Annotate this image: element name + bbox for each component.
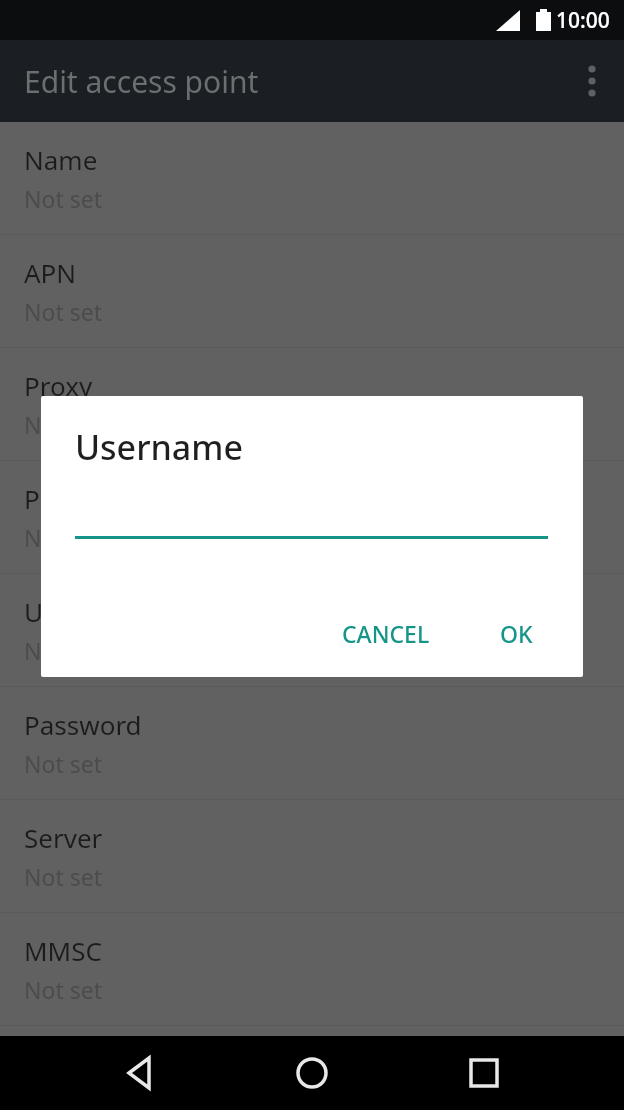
button[interactable]: Proxy xyxy=(0,348,624,460)
button[interactable]: MMSC xyxy=(0,913,624,1025)
staticText: Proxy xyxy=(24,368,93,403)
staticText: Name xyxy=(24,142,98,177)
button[interactable]: Name xyxy=(0,122,624,234)
staticText: 10:00 xyxy=(556,6,610,35)
button[interactable]: Back xyxy=(108,1041,172,1105)
staticText: Not set xyxy=(24,635,102,666)
staticText: OK xyxy=(500,618,533,649)
staticText: Not set xyxy=(24,974,102,1005)
staticText: Not set xyxy=(24,296,102,327)
staticText: Port xyxy=(24,481,76,516)
staticText: Not set xyxy=(24,861,102,892)
staticText: Not set xyxy=(24,183,102,214)
button[interactable]: Server xyxy=(0,800,624,912)
button[interactable]: Password xyxy=(0,687,624,799)
staticText: Not set xyxy=(24,409,102,440)
button[interactable]: More options xyxy=(560,49,624,113)
staticText: Password xyxy=(24,707,142,742)
button[interactable]: APN xyxy=(0,235,624,347)
staticText: CANCEL xyxy=(342,618,430,649)
button[interactable]: Port xyxy=(0,461,624,573)
staticText: Server xyxy=(24,820,103,855)
staticText: Not set xyxy=(24,522,102,553)
button[interactable]: Username xyxy=(0,574,624,686)
staticText: Username xyxy=(24,594,151,629)
button[interactable]: OK xyxy=(484,608,549,659)
button[interactable]: Home xyxy=(280,1041,344,1105)
staticText: Edit access point xyxy=(24,61,259,102)
button[interactable]: CANCEL xyxy=(326,608,446,659)
button[interactable]: Recent apps xyxy=(452,1041,516,1105)
staticText: APN xyxy=(24,255,77,290)
staticText: Not set xyxy=(24,748,102,779)
staticText: MMSC xyxy=(24,933,102,968)
staticText: Username xyxy=(75,424,243,470)
